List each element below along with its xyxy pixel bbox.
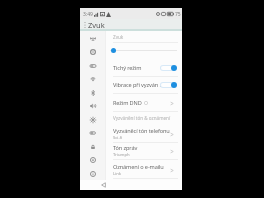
button[interactable]: info <box>80 167 105 181</box>
button[interactable]: Vibrace při vyzván .. <box>105 76 182 94</box>
button[interactable]: bluetooth <box>80 86 105 100</box>
staticText: Sci-fi <box>113 135 123 141</box>
button[interactable]: bow <box>80 32 105 46</box>
staticText: 3:49 <box>83 11 93 18</box>
button[interactable]: Tón zpráv <box>105 142 182 160</box>
button[interactable]: lock <box>80 140 105 154</box>
staticText: Zvuk <box>113 34 124 40</box>
button[interactable]: sim <box>80 59 105 73</box>
button[interactable]: Back <box>97 180 109 190</box>
staticText: Link <box>113 171 122 177</box>
button[interactable]: Oznámení o e-mailu <box>105 161 182 179</box>
button[interactable]: wifi <box>80 72 105 86</box>
staticText: Režim DND <box>113 99 142 107</box>
staticText: Zvuk <box>88 20 105 30</box>
staticText: Vyzvánění tón & oznámení <box>113 115 171 121</box>
staticText: Tichý režim <box>113 64 161 72</box>
staticText: Triumph <box>113 152 130 158</box>
button[interactable]: sound <box>80 99 105 113</box>
button[interactable]: gear <box>80 45 105 59</box>
staticText: 75 <box>175 11 181 18</box>
staticText: Oznámení o e-mailu <box>113 163 164 171</box>
button[interactable]: brightness <box>80 113 105 127</box>
button[interactable]: Režim DND <box>105 94 182 112</box>
button[interactable]: Menu <box>80 19 89 31</box>
staticText: Vyzváněcí tón telefonu <box>113 127 170 135</box>
button[interactable]: battery <box>80 126 105 140</box>
staticText: Tón zpráv <box>113 144 138 152</box>
staticText: Vibrace při vyzván .. <box>113 81 161 89</box>
button[interactable]: location <box>80 153 105 167</box>
button[interactable]: Vyzváněcí tón telefonu <box>105 125 182 143</box>
button[interactable]: Tichý režim <box>105 59 182 77</box>
